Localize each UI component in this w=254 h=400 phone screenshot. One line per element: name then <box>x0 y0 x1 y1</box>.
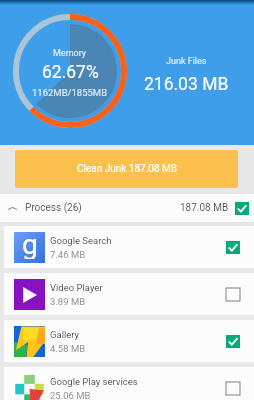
button[interactable]: Select <box>225 240 240 255</box>
staticText: Video Player <box>50 282 103 293</box>
button[interactable]: Process (26) <box>0 194 254 222</box>
button[interactable]: Video Player <box>4 273 254 315</box>
staticText: Google Play services <box>50 376 138 387</box>
staticText: Process (26) <box>25 202 82 214</box>
button[interactable]: Clean Junk 187.08 MB <box>15 150 238 188</box>
button[interactable]: Google Play services <box>4 367 254 400</box>
staticText: Memory <box>53 48 87 59</box>
staticText: 25.06 MB <box>50 390 91 400</box>
button[interactable]: g <box>4 226 254 268</box>
button[interactable]: Gallery <box>4 320 254 362</box>
staticText: Google Search <box>50 235 112 246</box>
staticText: 216.03 MB <box>144 74 229 95</box>
staticText: 62.67% <box>42 62 99 83</box>
button[interactable]: Select <box>234 201 249 216</box>
staticText: g <box>22 228 38 259</box>
button[interactable]: Select <box>225 287 240 302</box>
staticText: 187.08 MB <box>180 202 229 214</box>
button[interactable]: Select <box>225 334 240 349</box>
staticText: Junk Files <box>166 56 207 67</box>
staticText: 7.46 MB <box>50 249 86 260</box>
button[interactable]: Select <box>225 381 240 396</box>
staticText: Gallery <box>50 329 80 340</box>
staticText: 4.58 MB <box>50 343 86 354</box>
staticText: 1162MB/1855MB <box>32 87 108 98</box>
staticText: Clean Junk 187.08 MB <box>77 163 177 175</box>
staticText: 3.89 MB <box>50 296 86 307</box>
